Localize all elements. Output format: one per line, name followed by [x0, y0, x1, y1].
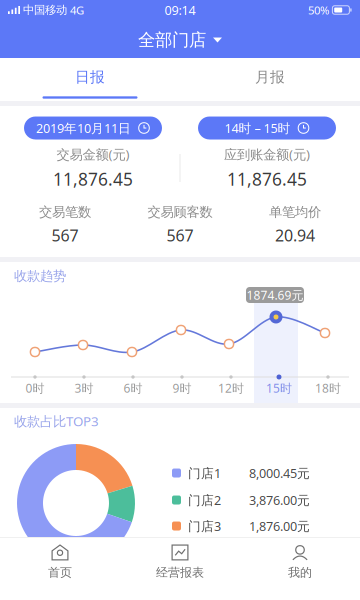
staticText: 我的 [288, 565, 312, 580]
staticText: 1874.69元 [246, 287, 303, 303]
staticText: 6时 [123, 380, 142, 396]
staticText: 交易笔数 [39, 204, 91, 220]
staticText: 门店2 [188, 491, 221, 509]
staticText: 11,876.45 [53, 167, 133, 191]
button[interactable]: 月报 [210, 57, 330, 97]
staticText: 12时 [218, 380, 244, 396]
staticText: 日报 [75, 68, 105, 86]
staticText: 2019年10月11日 [36, 119, 131, 137]
staticText: 18时 [315, 380, 341, 396]
staticText: 交易金额(元) [56, 145, 129, 163]
button[interactable]: 我的 [245, 543, 355, 581]
staticText: 4G [70, 2, 84, 18]
staticText: 50% [308, 2, 329, 18]
staticText: 567 [51, 224, 78, 246]
staticText: 月报 [255, 68, 285, 86]
staticText: 门店1 [188, 464, 221, 482]
staticText: 20.94 [275, 224, 315, 246]
staticText: 交易顾客数 [147, 204, 212, 220]
button[interactable]: 14时 – 15时 [198, 116, 336, 139]
staticText: 收款占比TOP3 [14, 412, 99, 430]
staticText: 应到账金额(元) [224, 145, 310, 163]
staticText: 3时 [74, 380, 93, 396]
staticText: 门店3 [188, 517, 221, 535]
button[interactable]: 2019年10月11日 [24, 116, 162, 139]
button[interactable]: 全部门店 [115, 24, 245, 56]
button[interactable]: 经营报表 [125, 543, 235, 581]
staticText: 首页 [48, 565, 72, 580]
staticText: 15时 [266, 380, 292, 396]
staticText: 中国移动 [23, 3, 67, 17]
button[interactable]: 首页 [5, 543, 115, 581]
staticText: 单笔均价 [269, 204, 321, 220]
staticText: 8,000.45元 [249, 464, 310, 482]
staticText: 09:14 [164, 1, 195, 19]
staticText: 567 [166, 224, 193, 246]
staticText: 0时 [25, 380, 44, 396]
staticText: 收款趋势 [14, 268, 66, 284]
staticText: 14时 – 15时 [224, 119, 290, 137]
staticText: 9时 [172, 380, 191, 396]
staticText: 全部门店 [138, 29, 206, 51]
staticText: 1,876.00元 [249, 517, 310, 535]
staticText: 11,876.45 [227, 167, 307, 191]
staticText: 经营报表 [156, 565, 204, 580]
button[interactable]: 日报 [30, 57, 150, 97]
staticText: 3,876.00元 [249, 491, 310, 509]
